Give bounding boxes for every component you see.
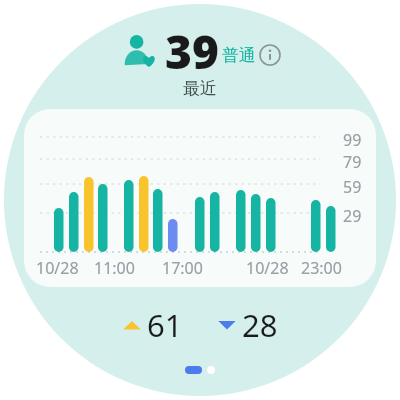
button[interactable]: Minimum bbox=[217, 304, 278, 346]
button[interactable]: Stress level bbox=[119, 20, 281, 83]
staticText: 79 bbox=[343, 151, 362, 173]
staticText: 29 bbox=[343, 205, 362, 227]
button[interactable]: 99 bbox=[24, 109, 376, 287]
staticText: 99 bbox=[343, 129, 362, 151]
other: Minimum bbox=[217, 315, 237, 335]
staticText: 11:00 bbox=[94, 257, 135, 279]
staticText: 普通 bbox=[222, 45, 256, 66]
staticText: 10/28 bbox=[246, 257, 289, 279]
other: Stress level bbox=[119, 30, 163, 74]
other: Maximum bbox=[122, 315, 142, 335]
staticText: 39 bbox=[165, 20, 219, 83]
staticText: 23:00 bbox=[301, 257, 342, 279]
staticText: 17:00 bbox=[162, 257, 203, 279]
button[interactable]: Information bbox=[259, 44, 281, 66]
button[interactable]: Maximum bbox=[122, 304, 183, 346]
staticText: 10/28 bbox=[36, 257, 79, 279]
staticText: 28 bbox=[242, 304, 278, 346]
button[interactable]: Page 1 bbox=[185, 366, 202, 374]
staticText: 59 bbox=[343, 176, 362, 198]
staticText: 61 bbox=[147, 304, 183, 346]
button[interactable]: Page 2 bbox=[207, 366, 215, 374]
staticText: 最近 bbox=[183, 78, 217, 99]
